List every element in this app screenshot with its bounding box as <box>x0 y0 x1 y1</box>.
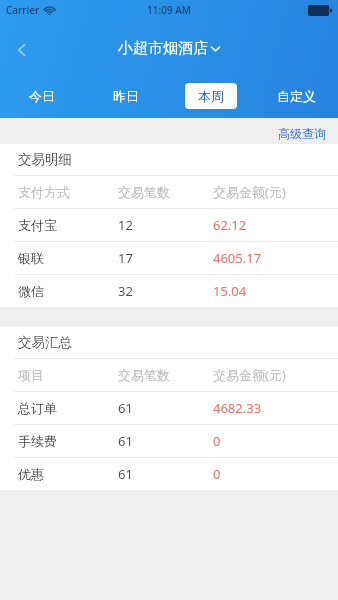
button[interactable]: 高级查询 <box>266 124 338 143</box>
button[interactable]: 微信 <box>0 275 338 307</box>
staticText: 本周 <box>198 88 224 104</box>
staticText: 11:09 AM <box>147 3 191 17</box>
staticText: 61 <box>118 399 133 417</box>
staticText: 今日 <box>29 88 55 104</box>
button[interactable]: 项目 <box>0 359 338 391</box>
staticText: 17 <box>118 249 133 267</box>
staticText: 小超市烟酒店 <box>118 39 208 58</box>
staticText: 手续费 <box>18 433 57 449</box>
staticText: 4682.33 <box>213 399 262 417</box>
staticText: 61 <box>118 432 133 450</box>
button[interactable]: 支付方式 <box>0 176 338 208</box>
button[interactable]: 自定义 <box>267 83 325 109</box>
staticText: 昨日 <box>113 88 139 104</box>
staticText: 15.04 <box>213 282 247 300</box>
staticText: 优惠 <box>18 466 44 482</box>
button[interactable]: 昨日 <box>97 83 155 109</box>
button[interactable]: 本周 <box>185 83 237 109</box>
button[interactable]: 手续费 <box>0 425 338 457</box>
button[interactable]: 优惠 <box>0 458 338 490</box>
button[interactable]: 总订单 <box>0 392 338 424</box>
staticText: 支付宝 <box>18 217 57 233</box>
button[interactable]: 今日 <box>13 83 71 109</box>
staticText: 交易笔数 <box>118 367 170 383</box>
staticText: 4605.17 <box>213 249 262 267</box>
staticText: 32 <box>118 282 133 300</box>
staticText: 支付方式 <box>18 184 70 200</box>
staticText: 0 <box>213 432 221 450</box>
staticText: 自定义 <box>277 88 316 104</box>
staticText: 总订单 <box>18 400 57 416</box>
staticText: 62.12 <box>213 216 247 234</box>
staticText: 0 <box>213 465 221 483</box>
staticText: 项目 <box>18 367 44 383</box>
staticText: 银联 <box>18 250 44 266</box>
staticText: 交易笔数 <box>118 184 170 200</box>
button[interactable]: 银联 <box>0 242 338 274</box>
staticText: 12 <box>118 216 133 234</box>
staticText: 高级查询 <box>278 126 326 141</box>
staticText: 交易汇总 <box>18 334 72 351</box>
staticText: 交易金额(元) <box>213 183 286 201</box>
button[interactable]: 支付宝 <box>0 209 338 241</box>
button[interactable]: Back <box>6 34 38 66</box>
staticText: 交易明细 <box>18 151 72 168</box>
staticText: 61 <box>118 465 133 483</box>
staticText: 交易金额(元) <box>213 366 286 384</box>
button[interactable]: 小超市烟酒店 <box>112 37 227 60</box>
staticText: Carrier <box>6 3 40 17</box>
staticText: 微信 <box>18 283 44 299</box>
